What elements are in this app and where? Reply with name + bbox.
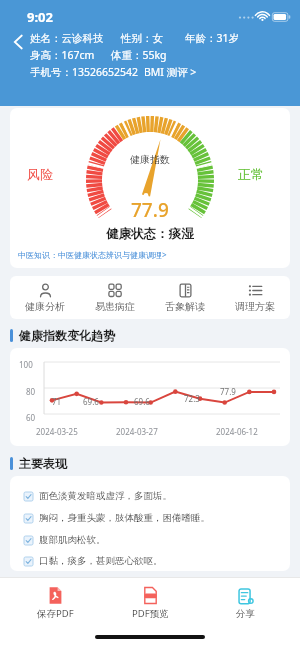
staticText: 2024-06-12 — [216, 426, 258, 437]
staticText: 风险 — [27, 166, 53, 182]
staticText: 胸闷，身重头蒙，肢体酸重，困倦嗜睡。 — [39, 512, 210, 524]
staticText: 年龄：31岁 — [185, 31, 240, 45]
staticText: 80 — [26, 386, 36, 397]
button[interactable]: Back — [4, 29, 30, 55]
button[interactable]: 手机号：13526652542 — [30, 65, 197, 79]
staticText: 健康分析 — [25, 300, 65, 313]
button[interactable]: 易患病症 — [80, 283, 150, 313]
staticText: 健康指数 — [130, 153, 170, 166]
staticText: 9:02 — [27, 8, 53, 26]
staticText: 71 — [52, 396, 62, 407]
staticText: 舌象解读 — [165, 300, 205, 313]
staticText: 健康指数变化趋势 — [19, 328, 115, 343]
staticText: 体重：55kg — [111, 48, 167, 62]
staticText: 性别：女 — [121, 32, 163, 45]
staticText: 姓名：云诊科技 — [30, 32, 104, 45]
staticText: 易患病症 — [95, 300, 135, 313]
staticText: 腹部肌肉松软。 — [39, 534, 106, 546]
staticText: 身高：167cm — [30, 48, 95, 62]
staticText: 2024-03-25 — [36, 426, 78, 437]
button[interactable]: 胸闷，身重头蒙，肢体酸重，困倦嗜睡。 — [24, 507, 290, 529]
staticText: PDF预览 — [132, 607, 169, 620]
staticText: 健康状态：痰湿 — [106, 226, 194, 242]
staticText: 手机号：13526652542 — [30, 65, 139, 79]
staticText: 保存PDF — [37, 607, 74, 620]
staticText: 69.6 — [83, 396, 99, 407]
button[interactable]: 中医知识：中医健康状态辨识与健康调理> — [18, 249, 290, 260]
button[interactable]: 调理方案 — [220, 283, 290, 313]
button[interactable]: 舌象解读 — [150, 283, 220, 313]
button[interactable]: 面色淡黄发暗或虚浮，多面垢。 — [24, 485, 290, 507]
button[interactable]: 口黏，痰多，甚则恶心欲呕。 — [24, 551, 290, 571]
button[interactable]: 腹部肌肉松软。 — [24, 529, 290, 551]
staticText: 72.3 — [184, 393, 200, 404]
button[interactable]: Share — [205, 587, 285, 620]
staticText: 主要表现 — [19, 456, 67, 471]
button[interactable]: PDF preview — [110, 586, 190, 620]
staticText: 正常 — [238, 166, 264, 182]
staticText: 中医知识：中医健康状态辨识与健康调理> — [18, 249, 167, 260]
staticText: 69.6 — [134, 396, 150, 407]
staticText: 分享 — [236, 608, 255, 620]
button[interactable]: Save PDF — [15, 586, 95, 620]
button[interactable]: 健康分析 — [10, 283, 80, 313]
staticText: 调理方案 — [235, 300, 275, 313]
staticText: BMI 测评 > — [144, 65, 197, 79]
staticText: 77.9 — [131, 197, 169, 223]
staticText: 77.9 — [220, 386, 236, 397]
staticText: 60 — [26, 412, 36, 423]
staticText: 口黏，痰多，甚则恶心欲呕。 — [39, 555, 163, 567]
staticText: 100 — [19, 359, 33, 370]
staticText: 面色淡黄发暗或虚浮，多面垢。 — [39, 490, 172, 502]
staticText: 2024-03-27 — [116, 426, 158, 437]
